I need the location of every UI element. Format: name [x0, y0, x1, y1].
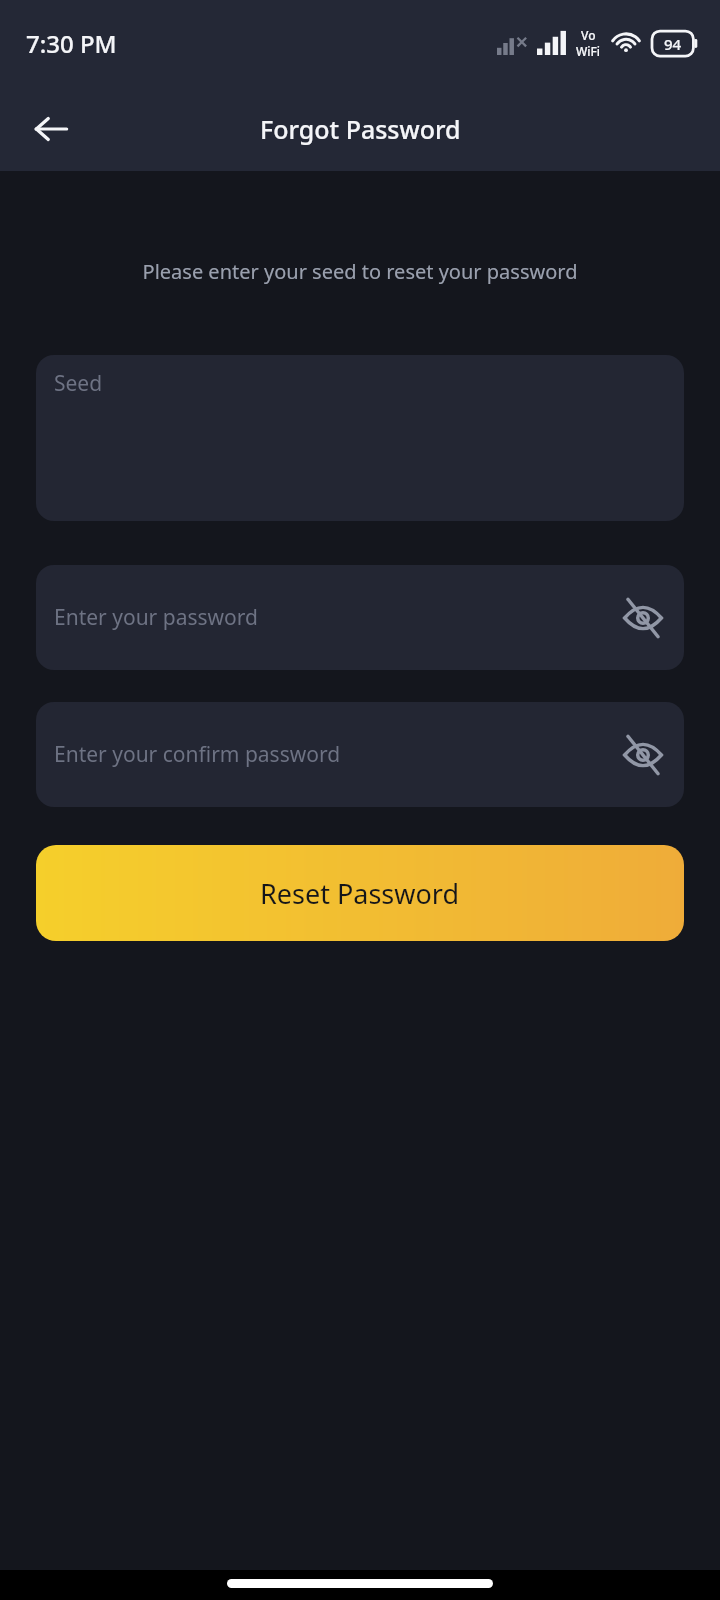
staticText: Reset Password	[260, 875, 460, 912]
button[interactable]: Enter your password	[36, 565, 684, 670]
button[interactable]: Seed	[36, 355, 684, 521]
button[interactable]: Toggle password visibility	[614, 589, 672, 647]
button[interactable]: Enter your confirm password	[36, 702, 684, 807]
staticText: Seed	[54, 369, 103, 398]
staticText: Enter your password	[54, 603, 258, 632]
button[interactable]: Reset Password	[36, 845, 684, 941]
staticText: 94	[664, 34, 682, 54]
staticText: 7:30 PM	[26, 27, 117, 60]
staticText: Please enter your seed to reset your pas…	[20, 258, 700, 285]
staticText: Forgot Password	[260, 112, 461, 146]
button[interactable]: Back	[20, 98, 82, 160]
staticText: Vo	[581, 27, 596, 43]
button[interactable]: Toggle password visibility	[614, 726, 672, 784]
staticText: Enter your confirm password	[54, 740, 341, 769]
staticText: WiFi	[576, 43, 601, 59]
